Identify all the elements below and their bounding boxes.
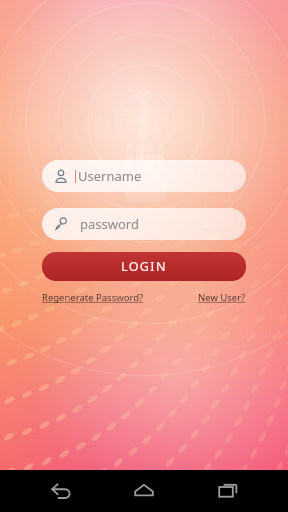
- button[interactable]: Back: [38, 470, 84, 512]
- button[interactable]: New User?: [198, 291, 246, 304]
- staticText: password: [80, 215, 139, 233]
- button[interactable]: Home: [121, 470, 167, 512]
- button[interactable]: Username: [42, 160, 246, 192]
- staticText: LOGIN: [121, 258, 167, 275]
- button[interactable]: password: [42, 208, 246, 240]
- button[interactable]: Recent apps: [205, 470, 251, 512]
- staticText: Regenerate Password?: [42, 291, 144, 304]
- button[interactable]: LOGIN: [42, 252, 246, 281]
- staticText: Username: [78, 167, 142, 185]
- staticText: New User?: [198, 291, 246, 304]
- button[interactable]: Regenerate Password?: [42, 291, 144, 304]
